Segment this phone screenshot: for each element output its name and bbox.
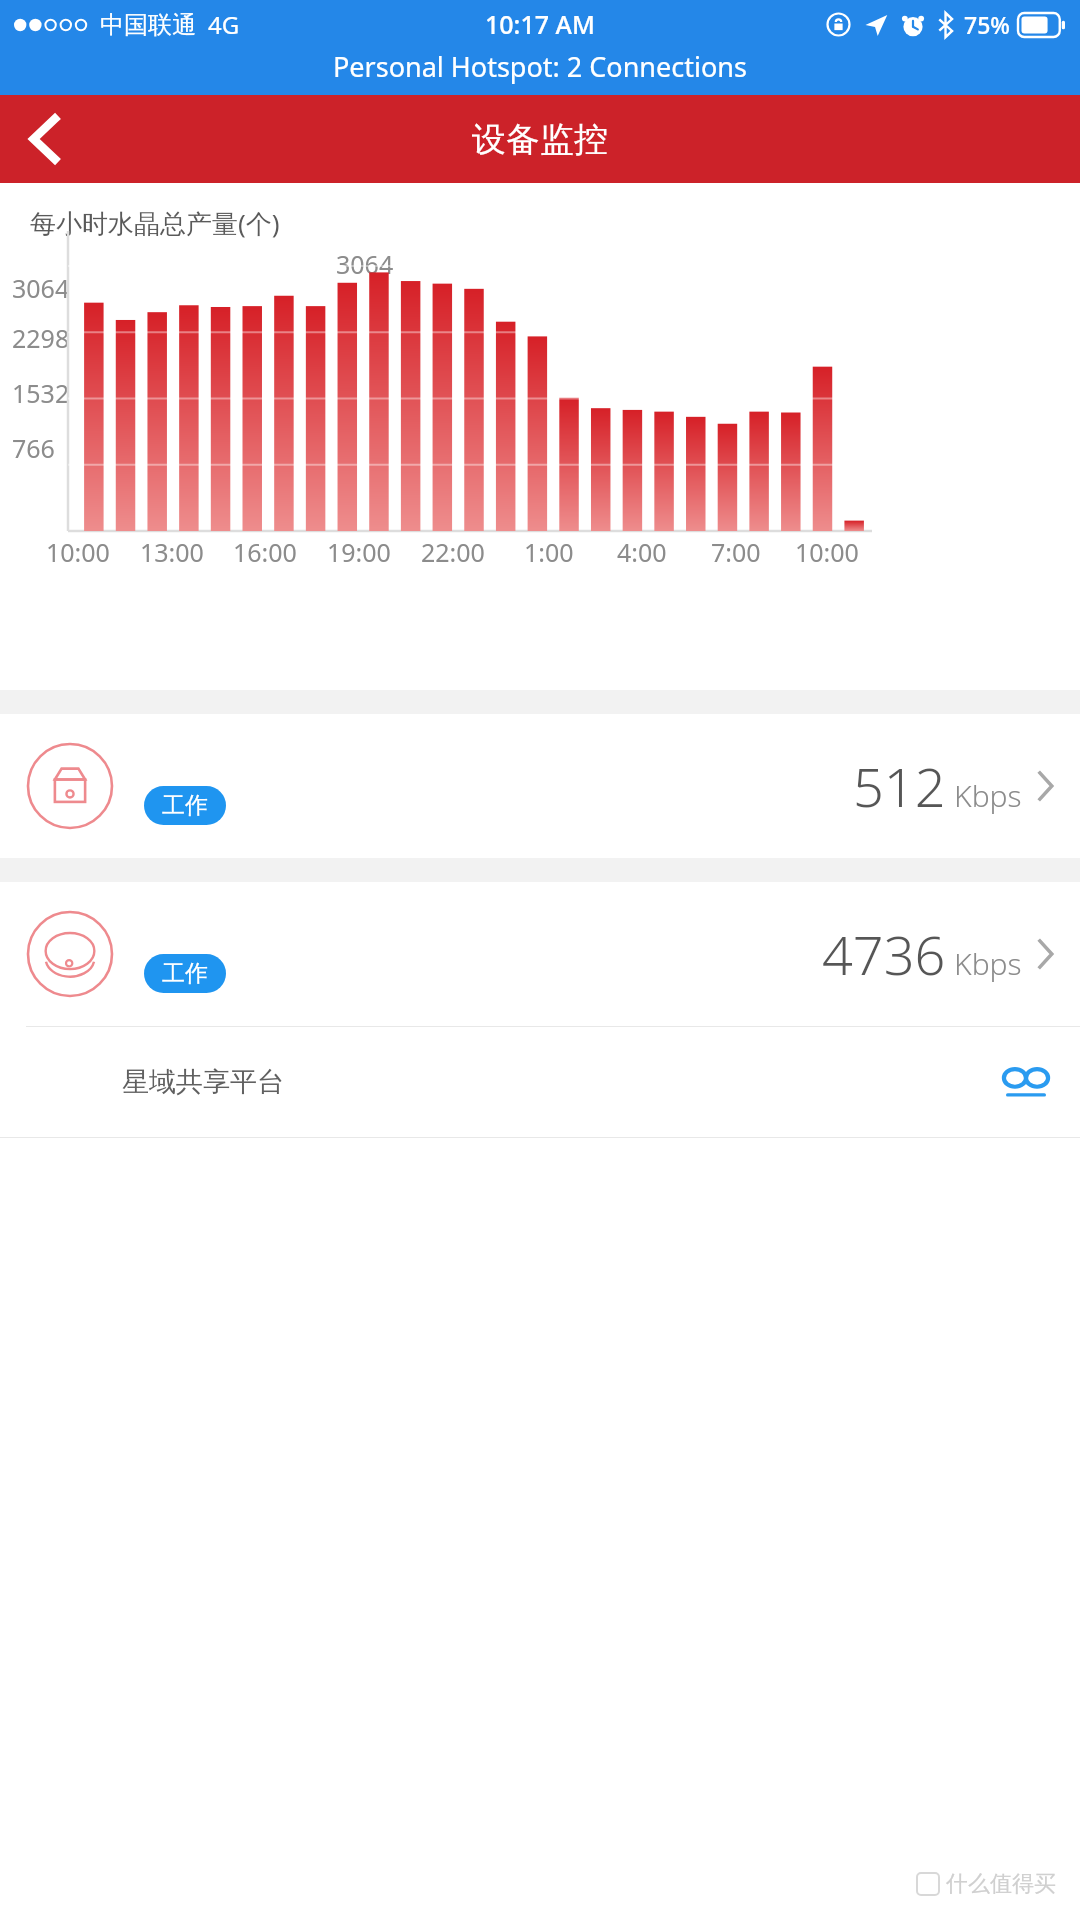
- staticText: 工作: [162, 791, 208, 820]
- button[interactable]: Back: [0, 95, 88, 183]
- button[interactable]: 星域共享平台: [0, 1027, 1080, 1137]
- staticText: 512: [853, 749, 946, 823]
- staticText: 什么值得买: [946, 1870, 1056, 1898]
- staticText: 10:00: [795, 535, 859, 569]
- staticText: Personal Hotspot: 2 Connections: [333, 48, 747, 85]
- staticText: 4736: [822, 917, 946, 991]
- staticText: 3064: [12, 271, 70, 305]
- other: Platform: [998, 1058, 1054, 1106]
- staticText: 工作: [162, 959, 208, 988]
- staticText: Kbps: [954, 775, 1022, 816]
- staticText: 1532: [12, 376, 70, 410]
- button[interactable]: 工作: [0, 882, 1080, 1026]
- staticText: 19:00: [327, 535, 391, 569]
- staticText: 4:00: [617, 535, 667, 569]
- button[interactable]: 工作: [0, 714, 1080, 858]
- staticText: 16:00: [233, 535, 297, 569]
- staticText: 75%: [964, 9, 1010, 40]
- staticText: 1:00: [524, 535, 574, 569]
- staticText: 10:17 AM: [485, 7, 595, 41]
- staticText: 每小时水晶总产量(个): [30, 205, 280, 241]
- staticText: 7:00: [711, 535, 761, 569]
- staticText: 4G: [208, 8, 240, 41]
- staticText: 星域共享平台: [122, 1065, 284, 1099]
- staticText: Kbps: [954, 943, 1022, 984]
- staticText: 中国联通: [100, 10, 196, 40]
- staticText: 2298: [12, 321, 70, 355]
- staticText: 22:00: [421, 535, 485, 569]
- staticText: 10:00: [46, 535, 110, 569]
- staticText: 13:00: [140, 535, 204, 569]
- staticText: 766: [12, 431, 55, 465]
- staticText: 3064: [336, 247, 394, 281]
- staticText: 设备监控: [472, 118, 608, 161]
